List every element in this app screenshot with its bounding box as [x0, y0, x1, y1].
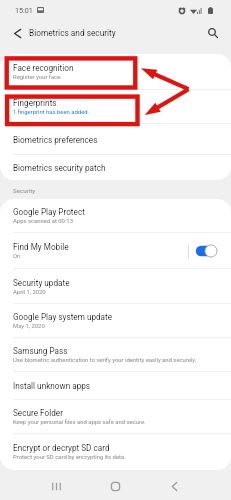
staticText: Install unknown apps — [13, 381, 91, 391]
staticText: Biometrics preferences — [13, 135, 98, 145]
staticText: Encrypt or decrypt SD card — [13, 443, 110, 453]
staticText: Find My Mobile — [13, 242, 69, 252]
staticText: Google Play system update — [13, 312, 113, 322]
staticText: Google Play Protect — [13, 207, 85, 217]
staticText: 15:01 — [15, 6, 33, 14]
button[interactable]: Find My Mobile — [0, 233, 231, 269]
button[interactable]: Search — [195, 20, 231, 46]
staticText: Fingerprints — [13, 98, 57, 108]
button[interactable]: Samsung Pass — [0, 338, 231, 372]
button[interactable]: Install unknown apps — [0, 372, 231, 400]
button[interactable]: Back — [145, 472, 204, 500]
button[interactable]: Face recognition — [0, 54, 231, 90]
button[interactable]: Security update — [0, 269, 231, 304]
button[interactable]: Biometrics security patch — [0, 155, 231, 180]
button[interactable]: Fingerprints — [0, 90, 231, 124]
staticText: Keep your personal files and apps safe a… — [13, 419, 146, 426]
button[interactable]: Secure Folder — [0, 400, 231, 434]
staticText: Security update — [13, 278, 70, 288]
button[interactable]: Google Play Protect — [0, 199, 231, 233]
staticText: Register your face. — [13, 74, 62, 81]
staticText: 1 fingerprint has been added. — [13, 109, 90, 116]
staticText: April 1, 2020 — [13, 289, 46, 296]
button[interactable]: Recent apps — [27, 472, 86, 500]
staticText: Biometrics and security — [29, 28, 116, 38]
button[interactable]: Encrypt or decrypt SD card — [0, 434, 231, 470]
staticText: May 1, 2020 — [13, 323, 45, 330]
staticText: Security — [13, 187, 36, 194]
staticText: Secure Folder — [13, 408, 63, 418]
staticText: Face recognition — [13, 63, 74, 73]
button[interactable]: Biometrics preferences — [0, 124, 231, 155]
staticText: Use biometric authentication to verify y… — [13, 357, 197, 364]
staticText: Apps scanned at 00:13 — [13, 218, 73, 225]
button[interactable]: Home — [86, 472, 145, 500]
staticText: Samsung Pass — [13, 346, 68, 356]
staticText: Biometrics security patch — [13, 163, 106, 173]
staticText: Protect your SD card by encrypting its d… — [13, 454, 126, 461]
staticText: On — [13, 253, 21, 260]
button[interactable]: Google Play system update — [0, 304, 231, 338]
button[interactable]: Find My Mobile toggle — [188, 244, 218, 258]
button[interactable]: Navigate up — [0, 20, 35, 46]
